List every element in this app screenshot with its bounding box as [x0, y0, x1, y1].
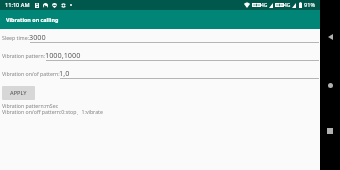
staticText: Vibration on/of pattern: [2, 70, 60, 77]
button[interactable]: Home [320, 75, 340, 95]
staticText: Vibration pattern: [2, 52, 46, 59]
button[interactable]: APPLY [2, 86, 35, 100]
staticText: 1000,1000 [45, 50, 81, 60]
staticText: 4G [284, 2, 291, 9]
button[interactable]: Recent apps [320, 121, 340, 141]
staticText: 4G [261, 2, 268, 9]
staticText: 11:10 AM [5, 1, 30, 9]
staticText: 91% [304, 1, 316, 9]
staticText: 3000 [29, 32, 46, 42]
staticText: Sleep time: [2, 34, 29, 41]
staticText: APPLY [10, 89, 27, 97]
button[interactable]: Back [320, 27, 340, 47]
staticText: Vibration on calling [6, 16, 59, 23]
staticText: 1,0 [59, 68, 70, 78]
staticText: Vibration pattern:mSec [2, 102, 59, 109]
staticText: Vibration on/off pattern:0:stop、1:vibrat… [2, 108, 103, 115]
